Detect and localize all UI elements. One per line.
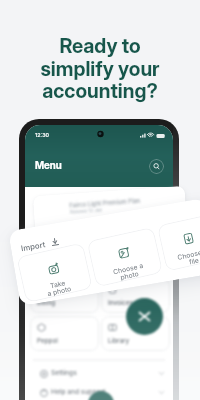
- button[interactable]: Library: [101, 316, 170, 351]
- staticText: 12:30: [35, 132, 50, 139]
- staticText: Import: [20, 239, 46, 252]
- staticText: Settings: [51, 369, 77, 377]
- staticText: Peppol: [37, 337, 58, 345]
- staticText: Fairco Light Premium Plan: [69, 197, 141, 209]
- staticText: Menu: [35, 159, 62, 171]
- button[interactable]: Choose a file: [156, 214, 200, 272]
- button[interactable]: Help and support: [30, 385, 168, 400]
- staticText: Renews 12 Jan: [70, 207, 103, 216]
- button[interactable]: Settings: [30, 366, 168, 385]
- button[interactable]: Add: [88, 391, 114, 400]
- staticText: Ready to simplify your accounting?: [0, 34, 200, 102]
- button[interactable]: Search: [149, 159, 164, 174]
- staticText: Invoices: [108, 299, 134, 307]
- button[interactable]: Choose a photo: [86, 226, 164, 288]
- button[interactable]: Take a photo: [16, 242, 93, 303]
- staticText: Choose a file: [176, 246, 200, 268]
- staticText: Choose a photo: [112, 261, 146, 282]
- button[interactable]: Billing: [30, 278, 99, 313]
- staticText: Billing: [37, 299, 56, 307]
- staticText: Library: [108, 337, 130, 345]
- button[interactable]: Peppol: [30, 316, 99, 351]
- button[interactable]: Close: [126, 298, 163, 335]
- staticText: Help and support: [51, 388, 106, 396]
- staticText: Take a photo: [44, 277, 72, 297]
- button[interactable]: Invoices: [101, 278, 170, 313]
